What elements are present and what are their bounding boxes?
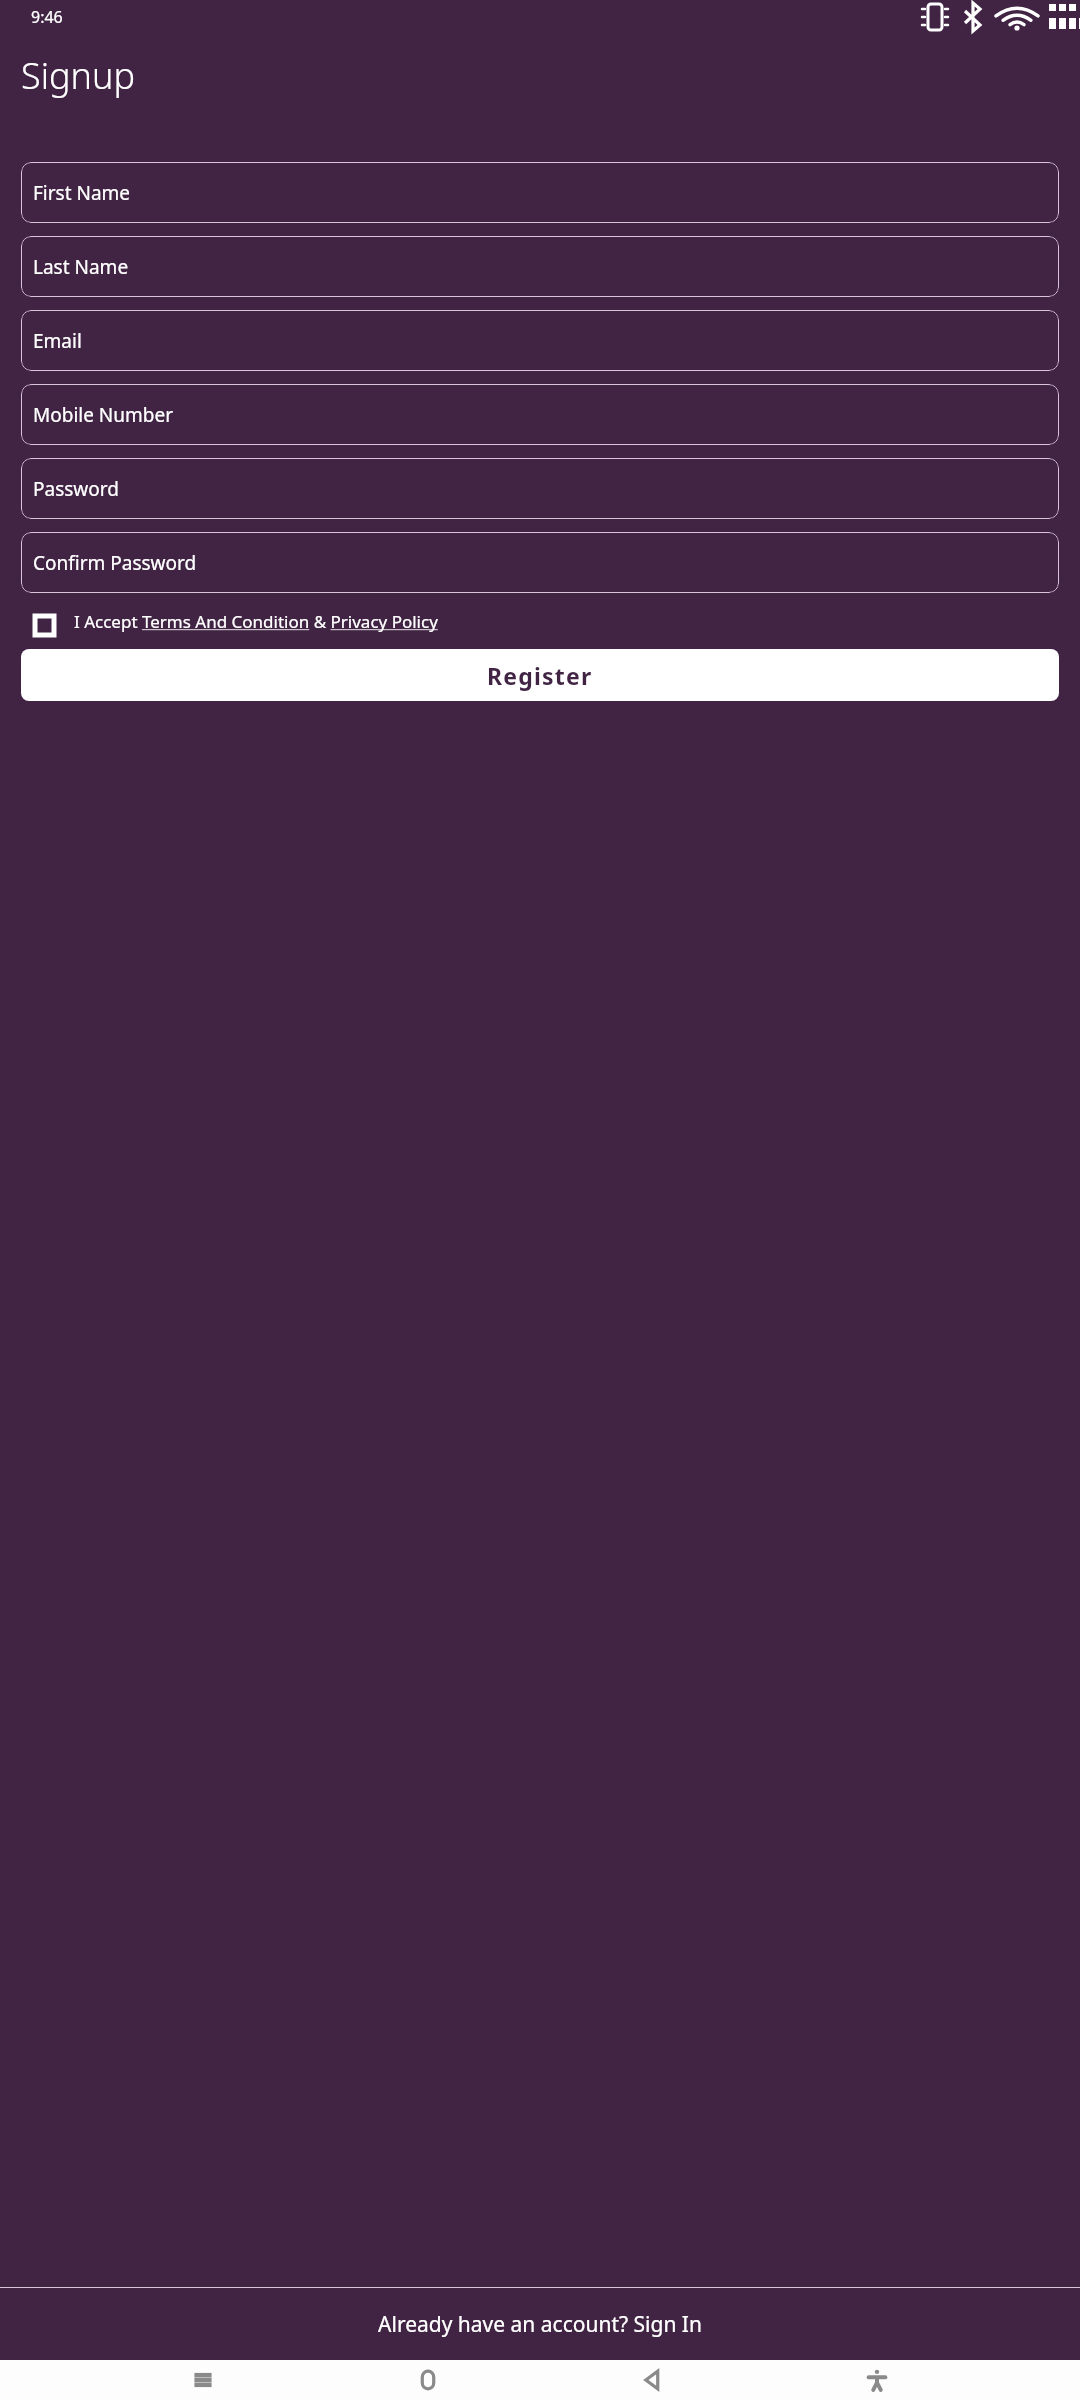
button[interactable]: Last Name: [21, 236, 1059, 297]
button[interactable]: First Name: [21, 162, 1059, 223]
staticText: First Name: [33, 180, 131, 206]
staticText: Already have an account? Sign In: [378, 2310, 702, 2339]
staticText: Register: [487, 660, 593, 691]
staticText: 9:46: [31, 6, 63, 28]
button[interactable]: Recent apps: [181, 2360, 225, 2400]
button[interactable]: Accessibility: [855, 2360, 899, 2400]
staticText: Last Name: [33, 254, 129, 280]
staticText: Signup: [21, 51, 135, 100]
button[interactable]: Accept terms checkbox: [21, 610, 1059, 635]
button[interactable]: Already have an account? Sign In: [0, 2288, 1080, 2360]
staticText: I Accept Terms And Condition & Privacy P…: [74, 610, 438, 633]
staticText: Email: [33, 328, 82, 354]
button[interactable]: Back: [630, 2360, 674, 2400]
button[interactable]: Register: [21, 649, 1059, 701]
button[interactable]: Home: [406, 2360, 450, 2400]
button[interactable]: Mobile Number: [21, 384, 1059, 445]
button[interactable]: Email: [21, 310, 1059, 371]
button[interactable]: Confirm Password: [21, 532, 1059, 593]
button[interactable]: Password: [21, 458, 1059, 519]
button[interactable]: Accept terms checkbox: [35, 616, 54, 635]
staticText: Confirm Password: [33, 550, 197, 576]
staticText: Password: [33, 476, 119, 502]
staticText: Mobile Number: [33, 402, 174, 428]
